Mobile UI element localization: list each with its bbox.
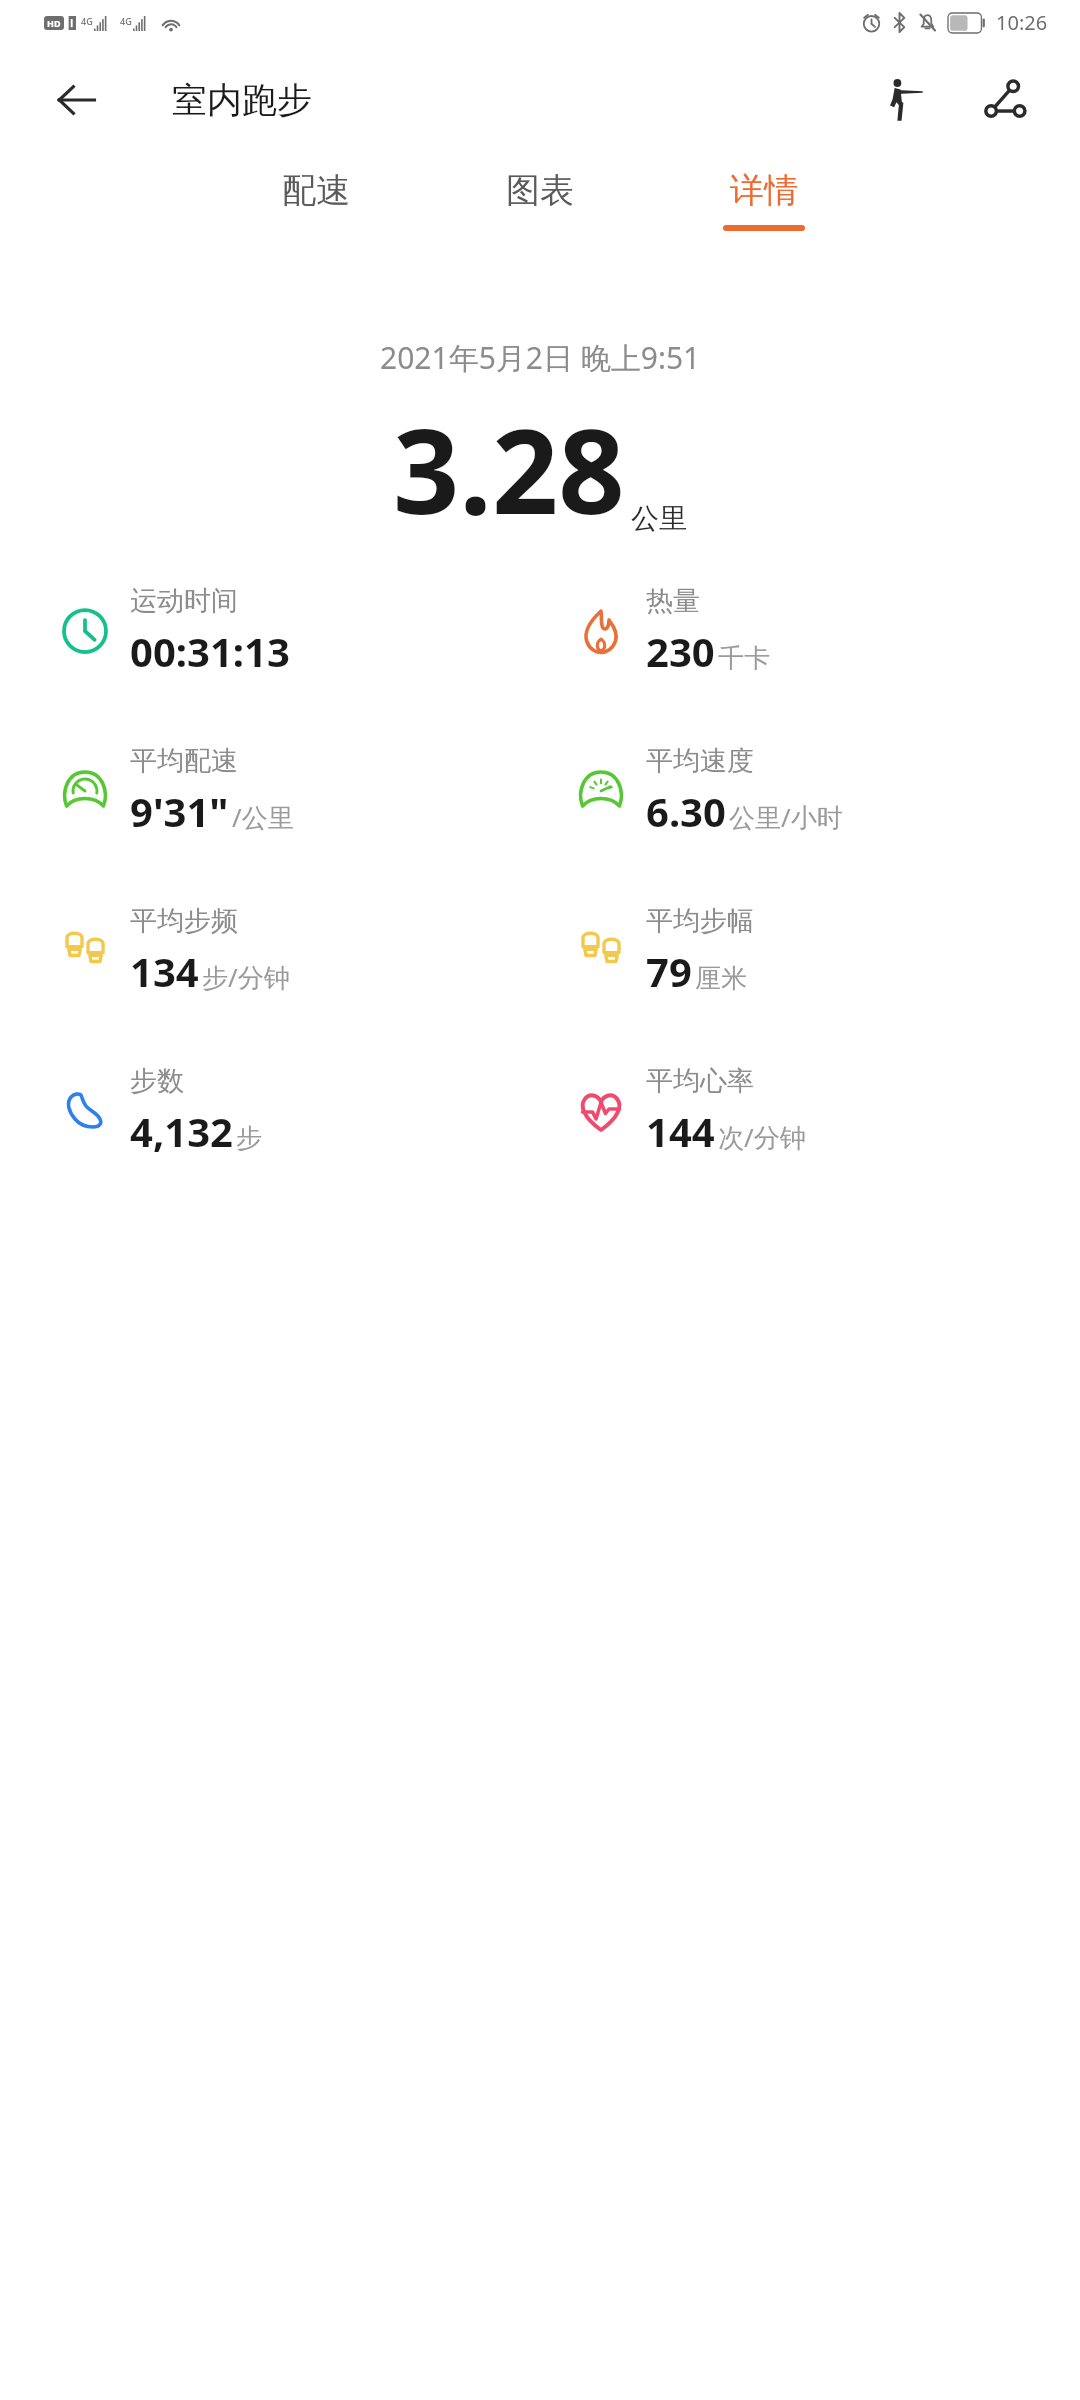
button[interactable]: 配速 [257, 163, 375, 237]
staticText: 运动时间 [130, 584, 238, 618]
button[interactable]: Share [972, 68, 1036, 132]
staticText: 79 [646, 944, 692, 998]
staticText: 平均速度 [646, 744, 754, 778]
button[interactable]: 热量 [540, 582, 1080, 680]
staticText: 00:31:13 [130, 624, 290, 678]
button[interactable]: 平均步频 [0, 902, 540, 1000]
staticText: 步数 [130, 1064, 184, 1098]
staticText: 公里 [631, 501, 687, 536]
staticText: 次/分钟 [718, 1119, 806, 1155]
staticText: 134 [130, 944, 199, 998]
staticText: HD [47, 17, 61, 29]
button[interactable]: 平均心率 [540, 1062, 1080, 1160]
staticText: 步 [236, 1122, 262, 1155]
staticText: /公里 [232, 799, 294, 835]
staticText: 4G [120, 15, 132, 27]
button[interactable]: 图表 [481, 163, 599, 237]
staticText: 144 [646, 1104, 715, 1158]
staticText: 平均步幅 [646, 904, 754, 938]
staticText: 室内跑步 [172, 78, 312, 122]
staticText: 图表 [506, 169, 574, 212]
staticText: 230 [646, 624, 715, 678]
staticText: 6.30 [646, 784, 726, 838]
button[interactable]: 运动时间 [0, 582, 540, 680]
staticText: 步/分钟 [202, 959, 290, 995]
staticText: 平均配速 [130, 744, 238, 778]
staticText: 9'31" [130, 784, 229, 838]
staticText: 公里/小时 [729, 799, 843, 835]
staticText: 详情 [730, 169, 798, 212]
staticText: 2021年5月2日 晚上9:51 [380, 337, 701, 378]
staticText: 千卡 [718, 642, 770, 675]
staticText: 4G [81, 15, 93, 27]
button[interactable]: 平均配速 [0, 742, 540, 840]
staticText: 平均心率 [646, 1064, 754, 1098]
staticText: 热量 [646, 584, 700, 618]
button[interactable]: 步数 [0, 1062, 540, 1160]
staticText: 配速 [282, 169, 350, 212]
staticText: 10:26 [996, 9, 1048, 36]
button[interactable]: 详情 [705, 163, 823, 237]
button[interactable]: Workout type [870, 68, 934, 132]
staticText: 平均步频 [130, 904, 238, 938]
staticText: 4,132 [130, 1104, 233, 1158]
button[interactable]: 平均速度 [540, 742, 1080, 840]
button[interactable]: 平均步幅 [540, 902, 1080, 1000]
staticText: 3.28 [393, 390, 625, 548]
button[interactable]: Back [48, 72, 104, 128]
staticText: 厘米 [695, 962, 747, 995]
